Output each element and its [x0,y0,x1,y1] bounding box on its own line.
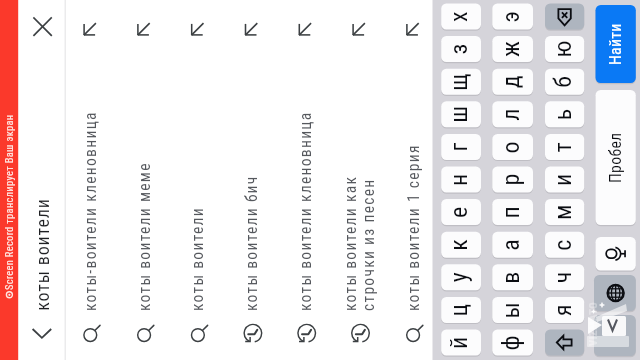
button[interactable] [226,0,280,360]
button[interactable] [334,0,388,360]
button[interactable] [118,0,172,360]
button[interactable]: Back [30,320,56,346]
button[interactable]: Clear search [30,14,56,40]
button[interactable] [65,0,119,360]
button[interactable] [172,0,226,360]
button[interactable] [387,0,441,360]
button[interactable] [280,0,334,360]
